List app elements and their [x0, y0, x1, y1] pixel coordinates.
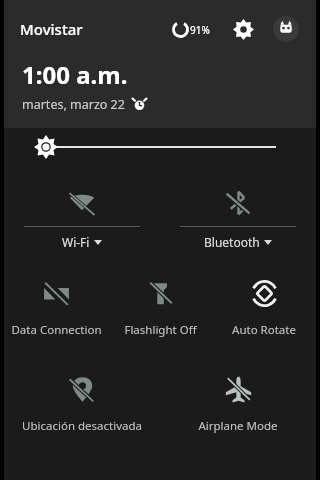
- button[interactable]: Settings: [228, 14, 258, 44]
- button[interactable]: Data Connection: [4, 272, 108, 338]
- staticText: 1:00 a.m.: [22, 58, 128, 91]
- staticText: Movistar: [20, 19, 83, 39]
- staticText: 91%: [190, 23, 210, 37]
- staticText: Ubicación desactivada: [22, 418, 142, 434]
- button[interactable]: Flashlight Off: [108, 272, 212, 338]
- button[interactable]: User profile: [272, 15, 300, 43]
- button[interactable]: Bluetooth: [160, 180, 316, 250]
- button[interactable]: Airplane Mode: [160, 368, 316, 434]
- button[interactable]: Ubicación desactivada: [4, 368, 160, 434]
- staticText: Bluetooth: [204, 234, 260, 250]
- button[interactable]: Wi-Fi: [4, 180, 160, 250]
- staticText: Flashlight Off: [124, 322, 197, 338]
- staticText: Data Connection: [11, 322, 102, 338]
- staticText: Auto Rotate: [232, 322, 296, 338]
- button[interactable]: Auto Rotate: [212, 272, 316, 338]
- staticText: martes, marzo 22: [22, 96, 125, 113]
- staticText: Wi-Fi: [62, 234, 90, 250]
- staticText: Airplane Mode: [198, 418, 278, 434]
- button[interactable]: Brightness: [4, 128, 316, 166]
